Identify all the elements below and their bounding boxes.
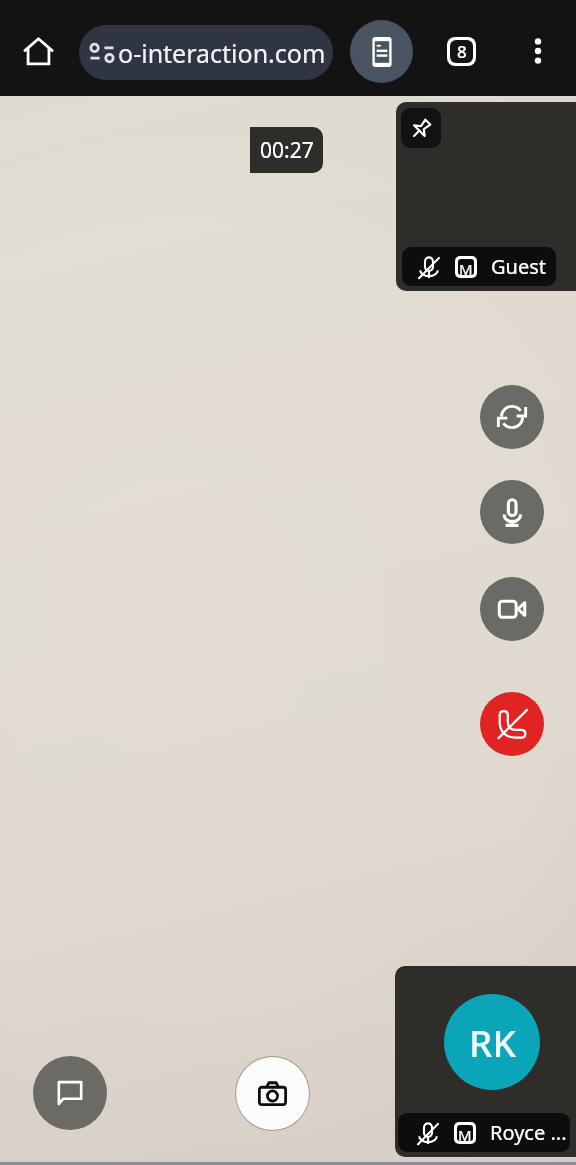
staticText: Royce ...	[490, 1119, 567, 1146]
staticText: o-interaction.com	[118, 36, 326, 70]
staticText: 00:27	[260, 136, 314, 165]
staticText: Guest	[491, 253, 546, 280]
button[interactable]: End call	[480, 692, 544, 756]
button[interactable]: Take photo	[236, 1057, 309, 1130]
button[interactable]: Pin	[401, 108, 441, 148]
button[interactable]: More options	[514, 27, 562, 75]
staticText: RK	[469, 1017, 516, 1067]
button[interactable]: Home	[14, 27, 62, 75]
staticText: 8	[457, 40, 467, 63]
button[interactable]: Mute	[480, 480, 544, 544]
button[interactable]: Switch camera	[480, 385, 544, 449]
button[interactable]: Camera off	[480, 577, 544, 641]
button[interactable]: Reading mode	[350, 20, 413, 83]
button[interactable]: o-interaction.com	[79, 25, 333, 80]
button[interactable]: Tabs	[437, 27, 485, 75]
staticText: M	[458, 1125, 472, 1141]
button[interactable]: Chat	[33, 1056, 107, 1130]
staticText: M	[459, 259, 473, 275]
